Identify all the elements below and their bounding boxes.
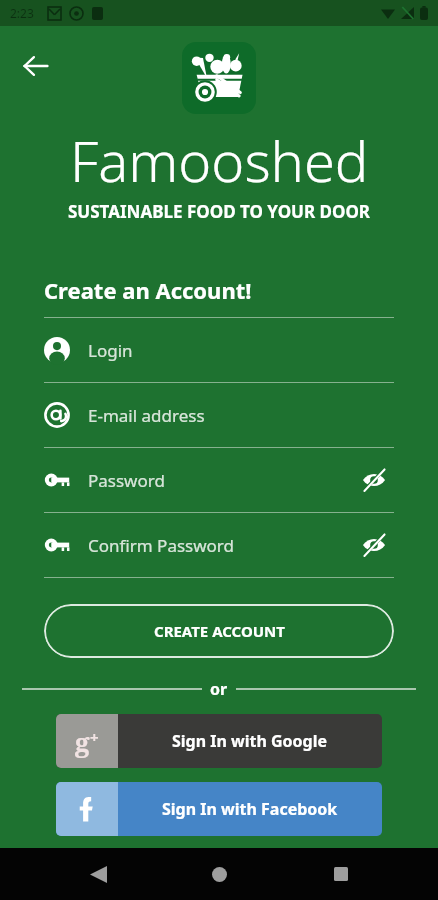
staticText: SUSTAINABLE FOOD TO YOUR DOOR (68, 200, 371, 223)
staticText: Famooshed (70, 122, 369, 198)
staticText: Create an Account! (44, 275, 252, 305)
button[interactable]: g (56, 714, 382, 768)
button[interactable]: Back (14, 44, 58, 88)
button[interactable]: Show password (354, 460, 394, 500)
button[interactable]: Back (74, 850, 122, 898)
staticText: Password (88, 469, 354, 492)
staticText: g (75, 724, 90, 759)
button[interactable]: Password (44, 448, 394, 512)
staticText: Sign In with Google (172, 730, 328, 752)
button[interactable]: CREATE ACCOUNT (44, 604, 394, 658)
staticText: Sign In with Facebook (162, 798, 338, 820)
button[interactable]: Login (44, 318, 394, 382)
button[interactable]: Recents (317, 850, 365, 898)
button[interactable]: Confirm Password (44, 513, 394, 577)
staticText: Confirm Password (88, 534, 354, 557)
button[interactable]: Show password (354, 525, 394, 565)
staticText: CREATE ACCOUNT (154, 621, 285, 641)
staticText: Login (88, 339, 394, 362)
staticText: 2:23 (10, 5, 34, 21)
button[interactable]: E-mail address (44, 383, 394, 447)
staticText: or (210, 678, 228, 700)
staticText: + (90, 727, 99, 747)
button[interactable]: Sign In with Facebook (56, 782, 382, 836)
button[interactable]: Home (195, 850, 243, 898)
staticText: E-mail address (88, 404, 394, 427)
